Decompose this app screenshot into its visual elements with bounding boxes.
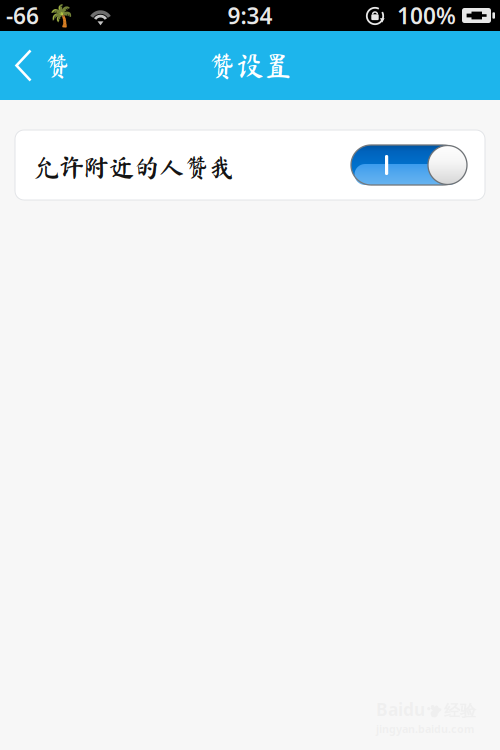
button[interactable]: 允许附近的人赞我 — [15, 130, 485, 200]
staticText: -66 — [6, 0, 39, 30]
staticText: 经验 — [444, 701, 476, 721]
staticText: Baidu — [376, 698, 425, 721]
staticText: 赞 — [44, 52, 71, 79]
staticText: 100% — [397, 0, 456, 30]
staticText: 🌴 — [48, 3, 75, 28]
staticText: 9:34 — [227, 0, 272, 30]
staticText: 允许附近的人赞我 — [34, 154, 234, 180]
staticText: 赞设置 — [208, 51, 292, 79]
button[interactable]: 赞 — [0, 31, 85, 100]
